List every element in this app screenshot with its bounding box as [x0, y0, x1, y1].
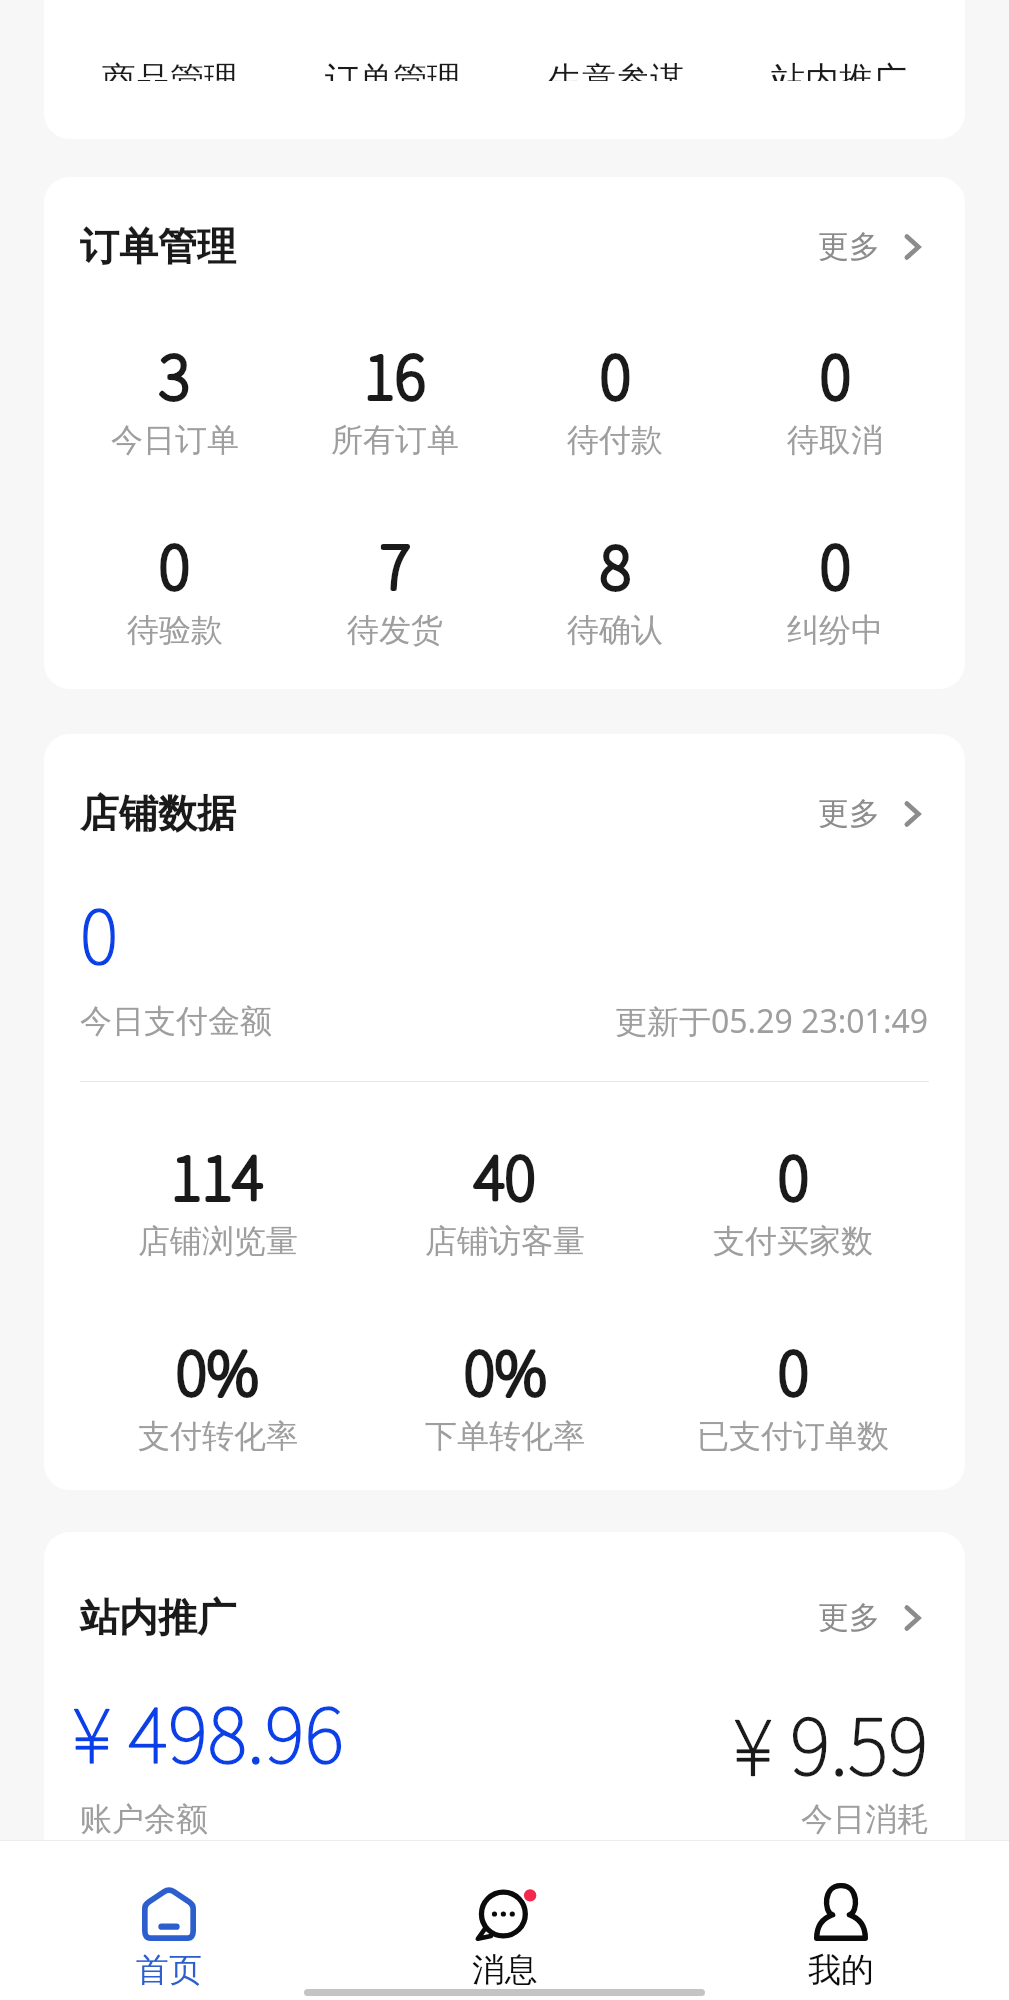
staticText: 更多 — [818, 227, 880, 266]
button[interactable]: 更多 — [816, 786, 922, 841]
button[interactable]: 0 — [725, 521, 945, 650]
staticText: 今日支付金额 — [80, 1001, 272, 1041]
button[interactable]: 更多 — [816, 219, 922, 274]
staticText: 店铺数据 — [80, 789, 236, 838]
staticText: 待验款 — [127, 610, 223, 650]
button[interactable]: 40 — [361, 1132, 649, 1261]
staticText: 更多 — [818, 794, 880, 833]
button[interactable]: 0 — [649, 1132, 937, 1261]
staticText: 我的 — [808, 1949, 874, 1991]
staticText: 0% — [176, 1327, 259, 1412]
staticText: 0 — [159, 521, 190, 606]
staticText: 订单管理 — [80, 222, 236, 271]
button[interactable]: 114 — [74, 1132, 361, 1261]
staticText: 待付款 — [567, 420, 663, 460]
button[interactable]: 3 — [64, 331, 285, 460]
staticText: 待确认 — [567, 610, 663, 650]
button[interactable]: 0 — [64, 521, 285, 650]
staticText: 所有订单 — [331, 420, 459, 460]
staticText: 店铺浏览量 — [138, 1221, 298, 1261]
staticText: 0% — [464, 1327, 547, 1412]
staticText: 7 — [380, 521, 411, 606]
staticText: 0 — [820, 521, 851, 606]
staticText: 3 — [159, 331, 190, 416]
staticText: 更新于05.29 23:01:49 — [615, 999, 929, 1043]
button[interactable]: 我的 — [673, 1840, 1009, 2000]
staticText: ¥ 9.59 — [733, 1686, 929, 1797]
button[interactable]: 0 — [725, 331, 945, 460]
button[interactable]: 0% — [361, 1327, 649, 1456]
button[interactable]: 8 — [505, 521, 725, 650]
staticText: 账户余额 — [80, 1799, 208, 1839]
other: 我的 — [804, 1887, 878, 1941]
button[interactable]: 16 — [285, 331, 505, 460]
staticText: ¥ 9.59 — [733, 1686, 929, 1797]
staticText: 0 — [778, 1327, 809, 1412]
staticText: 店铺访客量 — [425, 1221, 585, 1261]
staticText: 7 — [380, 521, 411, 606]
staticText: 纠纷中 — [787, 610, 883, 650]
staticText: 0 — [80, 879, 119, 985]
staticText: 16 — [364, 331, 426, 416]
staticText: 站内推广 — [771, 58, 907, 81]
staticText: 114 — [171, 1132, 264, 1217]
button[interactable]: 7 — [285, 521, 505, 650]
staticText: 首页 — [136, 1949, 202, 1991]
button[interactable]: 0 — [649, 1327, 937, 1456]
staticText: 0 — [600, 331, 631, 416]
button[interactable]: 首页 — [0, 1840, 337, 2000]
staticText: 40 — [474, 1132, 536, 1217]
staticText: 8 — [600, 521, 631, 606]
staticText: 待取消 — [787, 420, 883, 460]
staticText: 3 — [159, 331, 190, 416]
staticText: 0 — [820, 521, 851, 606]
staticText: 0 — [778, 1132, 809, 1217]
staticText: 0 — [778, 1327, 809, 1412]
staticText: 消息 — [472, 1949, 538, 1991]
staticText: 站内推广 — [80, 1593, 236, 1642]
staticText: 更多 — [818, 1598, 880, 1637]
staticText: 8 — [600, 521, 631, 606]
button[interactable]: 0% — [74, 1327, 361, 1456]
other: 消息 — [468, 1887, 542, 1941]
staticText: ¥ 498.96 — [72, 1675, 344, 1785]
staticText: 订单管理 — [325, 58, 461, 81]
staticText: 40 — [474, 1132, 536, 1217]
button[interactable]: 消息 — [337, 1840, 673, 2000]
staticText: 16 — [364, 331, 426, 416]
staticText: 支付转化率 — [138, 1416, 298, 1456]
staticText: 0% — [464, 1327, 547, 1412]
staticText: 今日消耗 — [801, 1799, 929, 1839]
staticText: 0% — [176, 1327, 259, 1412]
staticText: 已支付订单数 — [697, 1416, 889, 1456]
staticText: 0 — [820, 331, 851, 416]
staticText: 商品管理 — [102, 58, 238, 81]
staticText: 下单转化率 — [425, 1416, 585, 1456]
button[interactable]: 更多 — [816, 1590, 922, 1645]
staticText: ¥ 498.96 — [72, 1675, 344, 1785]
staticText: 生意参谋 — [548, 58, 684, 81]
staticText: 0 — [80, 879, 119, 985]
staticText: 114 — [171, 1132, 264, 1217]
button[interactable]: 0 — [505, 331, 725, 460]
other: 首页 — [132, 1887, 206, 1941]
staticText: 0 — [159, 521, 190, 606]
staticText: 0 — [778, 1132, 809, 1217]
staticText: 今日订单 — [111, 420, 239, 460]
staticText: 0 — [820, 331, 851, 416]
staticText: 待发货 — [347, 610, 443, 650]
staticText: 支付买家数 — [713, 1221, 873, 1261]
staticText: 0 — [600, 331, 631, 416]
